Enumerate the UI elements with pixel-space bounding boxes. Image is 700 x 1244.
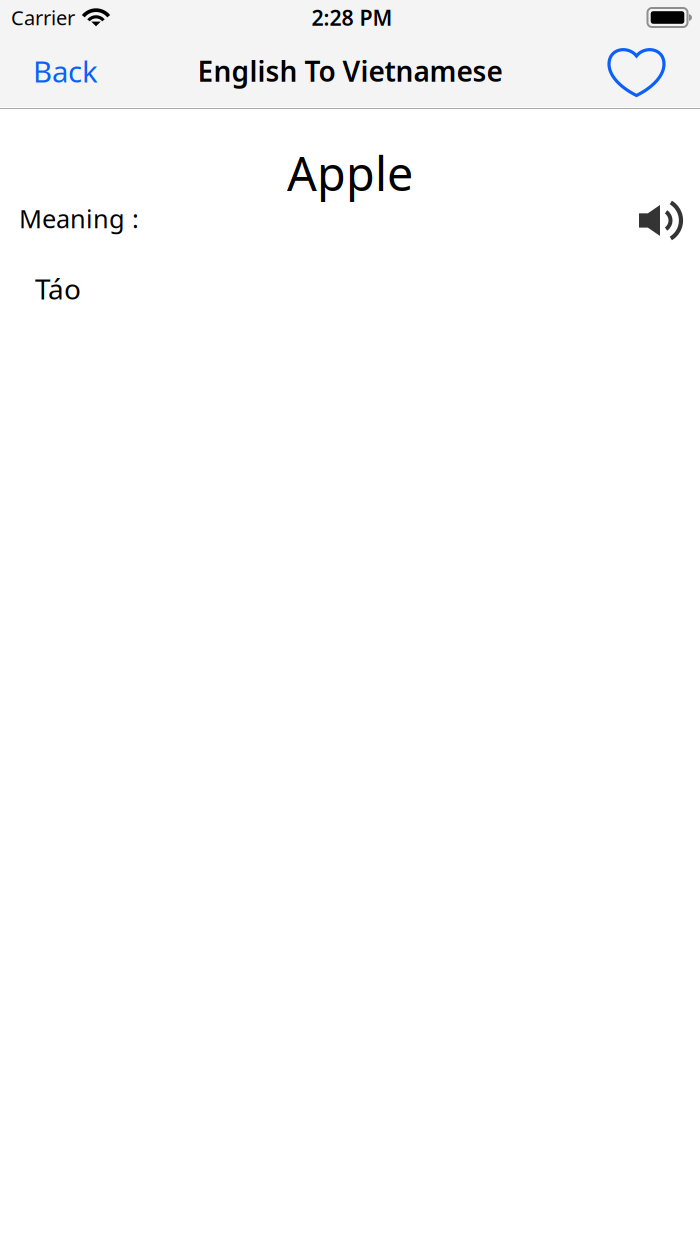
button[interactable]: Back <box>0 35 118 107</box>
staticText: Back <box>33 51 98 90</box>
staticText: Apple <box>287 142 413 204</box>
staticText: 2:28 PM <box>311 3 392 32</box>
button[interactable]: Play pronunciation <box>633 193 687 244</box>
staticText: Carrier <box>11 4 75 31</box>
button[interactable]: Add to favorites <box>587 35 700 107</box>
staticText: Táo <box>35 270 81 307</box>
staticText: English To Vietnamese <box>197 52 502 90</box>
staticText: Meaning : <box>19 202 139 235</box>
